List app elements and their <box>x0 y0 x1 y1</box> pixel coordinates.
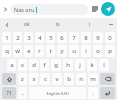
staticText: p <box>108 47 112 55</box>
button[interactable]: f <box>40 59 49 71</box>
button[interactable]: 8 <box>81 32 91 43</box>
button[interactable]: 2 <box>13 32 22 43</box>
staticText: q <box>5 47 9 55</box>
staticText: k <box>90 61 94 69</box>
staticText: r <box>38 47 41 55</box>
button[interactable]: Back <box>2 20 11 29</box>
button[interactable]: English (US) <box>29 87 86 99</box>
staticText: a <box>10 61 14 69</box>
button[interactable]: p <box>105 45 115 57</box>
staticText: 3 <box>27 34 31 42</box>
button[interactable]: d <box>29 59 38 71</box>
staticText: x <box>32 75 36 83</box>
staticText: y <box>60 47 64 55</box>
staticText: z <box>21 75 24 83</box>
button[interactable]: 7 <box>69 32 79 43</box>
staticText: d <box>32 61 36 69</box>
button[interactable]: e <box>24 45 33 57</box>
button[interactable]: g <box>51 59 61 71</box>
button[interactable]: j <box>75 59 85 71</box>
button[interactable]: x <box>29 73 38 85</box>
button[interactable]: v <box>52 73 62 85</box>
staticText: i <box>89 21 91 28</box>
staticText: , <box>22 89 24 97</box>
button[interactable]: Send <box>101 2 115 16</box>
staticText: ?1 <box>6 90 12 97</box>
staticText: c <box>44 75 47 83</box>
staticText: h <box>66 61 70 69</box>
button[interactable]: . <box>88 87 98 99</box>
button[interactable]: n <box>76 73 86 85</box>
button[interactable]: Stickers <box>90 4 100 14</box>
button[interactable]: Nas oru <box>10 4 88 15</box>
staticText: 8 <box>84 34 88 42</box>
button[interactable]: h <box>63 59 73 71</box>
button[interactable]: 5 <box>46 32 55 43</box>
staticText: o <box>96 47 100 55</box>
button[interactable]: k <box>87 59 97 71</box>
button[interactable]: Expand actions <box>1 5 10 14</box>
button[interactable]: More options <box>106 20 115 29</box>
staticText: 5 <box>49 34 53 42</box>
staticText: 1 <box>5 34 9 42</box>
button[interactable]: t <box>46 45 55 57</box>
button[interactable]: z <box>18 73 27 85</box>
staticText: l <box>103 61 105 69</box>
button[interactable]: s <box>18 59 27 71</box>
button[interactable]: r <box>35 45 44 57</box>
staticText: v <box>55 75 59 83</box>
staticText: e <box>27 47 31 55</box>
button[interactable]: 6 <box>57 32 67 43</box>
staticText: s <box>21 61 24 69</box>
button[interactable]: Backspace <box>100 73 115 85</box>
button[interactable]: b <box>64 73 74 85</box>
button[interactable]: l <box>99 59 109 71</box>
button[interactable]: 9 <box>93 32 103 43</box>
button[interactable]: is <box>42 18 74 31</box>
button[interactable]: a <box>7 59 16 71</box>
staticText: ok <box>24 21 30 28</box>
staticText: 7 <box>72 34 76 42</box>
button[interactable]: y <box>57 45 67 57</box>
staticText: English (US) <box>46 91 69 96</box>
staticText: w <box>15 47 20 55</box>
button[interactable]: 4 <box>35 32 44 43</box>
button[interactable]: , <box>18 87 27 99</box>
button[interactable]: m <box>88 73 98 85</box>
button[interactable]: ok <box>11 18 42 31</box>
staticText: 0 <box>108 34 112 42</box>
staticText: g <box>54 61 58 69</box>
button[interactable]: w <box>13 45 22 57</box>
button[interactable]: i <box>74 18 106 31</box>
button[interactable]: Enter <box>100 87 115 99</box>
button[interactable]: ?1 <box>2 87 16 99</box>
staticText: Nas oru <box>14 6 35 13</box>
staticText: . <box>92 89 94 97</box>
staticText: j <box>79 61 81 69</box>
button[interactable]: 1 <box>2 32 11 43</box>
button[interactable]: i <box>81 45 91 57</box>
button[interactable]: q <box>2 45 11 57</box>
staticText: u <box>72 47 76 55</box>
button[interactable]: Shift <box>2 73 16 85</box>
staticText: t <box>49 47 52 55</box>
staticText: 6 <box>60 34 64 42</box>
staticText: f <box>43 61 46 69</box>
button[interactable]: o <box>93 45 103 57</box>
staticText: 2 <box>16 34 20 42</box>
staticText: is <box>56 21 60 28</box>
staticText: 4 <box>38 34 42 42</box>
staticText: n <box>79 75 83 83</box>
button[interactable]: u <box>69 45 79 57</box>
button[interactable]: 0 <box>105 32 115 43</box>
staticText: 9 <box>96 34 100 42</box>
staticText: b <box>67 75 71 83</box>
staticText: i <box>85 47 87 55</box>
staticText: m <box>90 75 96 83</box>
button[interactable]: 3 <box>24 32 33 43</box>
button[interactable]: c <box>40 73 50 85</box>
